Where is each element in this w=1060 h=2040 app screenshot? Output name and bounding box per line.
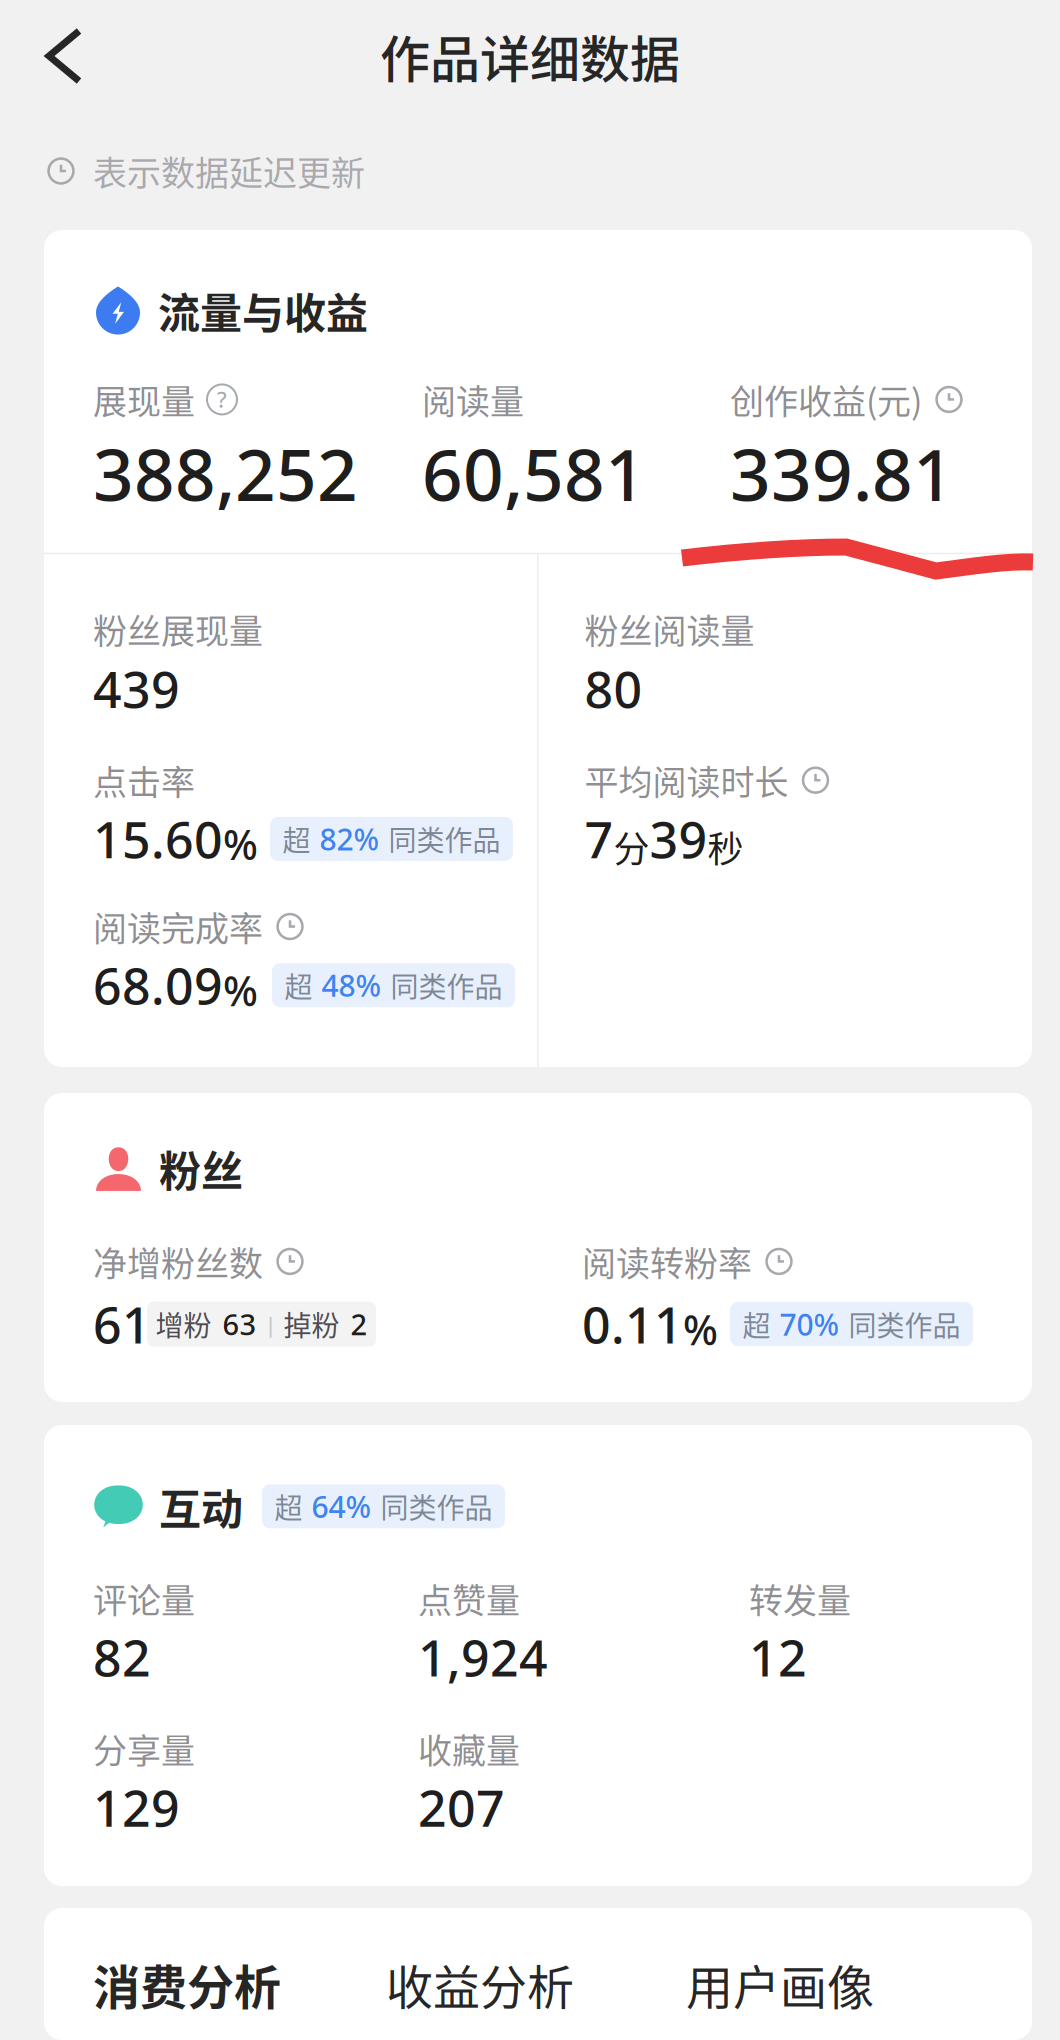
staticText: 粉丝: [159, 1138, 243, 1199]
button[interactable]: 消费分析: [77, 1926, 297, 2040]
staticText: 分: [613, 821, 649, 873]
staticText: 增粉: [155, 1304, 211, 1344]
staticText: 点击率: [93, 756, 195, 805]
staticText: 消费分析: [93, 1950, 281, 2018]
staticText: 129: [93, 1773, 180, 1841]
button[interactable]: 收益分析: [370, 1926, 590, 2040]
staticText: 82%: [319, 818, 379, 859]
staticText: 转发量: [749, 1574, 851, 1623]
staticText: 阅读完成率: [93, 902, 263, 951]
staticText: 流量与收益: [158, 280, 368, 341]
staticText: 82: [93, 1623, 151, 1691]
staticText: 掉粉: [283, 1304, 339, 1344]
staticText: 作品详细数据: [380, 20, 680, 92]
staticText: 7: [584, 805, 613, 873]
staticText: 1,924: [418, 1623, 548, 1691]
staticText: 70%: [779, 1304, 839, 1345]
staticText: 60,581: [422, 425, 646, 522]
staticText: %: [223, 962, 258, 1018]
staticText: 用户画像: [686, 1950, 874, 2018]
staticText: 同类作品: [380, 1486, 492, 1527]
staticText: 超: [284, 965, 312, 1005]
button[interactable]: 用户画像: [670, 1926, 890, 2040]
staticText: 15.60: [93, 805, 223, 873]
staticText: 分享量: [93, 1724, 195, 1773]
staticText: 粉丝展现量: [93, 604, 263, 653]
staticText: 439: [93, 654, 180, 723]
staticText: 超: [274, 1486, 302, 1527]
staticText: 39: [649, 805, 707, 873]
staticText: 同类作品: [388, 819, 500, 859]
staticText: 点赞量: [418, 1574, 520, 1623]
staticText: 388,252: [93, 425, 358, 522]
staticText: 61: [93, 1290, 151, 1358]
staticText: |: [264, 1309, 276, 1339]
staticText: ?: [217, 385, 227, 414]
staticText: 48%: [321, 965, 381, 1006]
staticText: 同类作品: [390, 965, 502, 1005]
staticText: 阅读转粉率: [582, 1237, 752, 1286]
staticText: 2: [350, 1304, 367, 1344]
staticText: 展现量: [93, 375, 195, 424]
staticText: 同类作品: [848, 1304, 960, 1344]
staticText: 互动: [159, 1476, 243, 1537]
staticText: 净增粉丝数: [93, 1237, 263, 1286]
staticText: 收藏量: [418, 1724, 520, 1773]
button[interactable]: Back: [0, 0, 108, 112]
staticText: %: [223, 816, 258, 872]
staticText: 秒: [707, 821, 743, 873]
staticText: 创作收益(元): [730, 375, 922, 424]
staticText: 粉丝阅读量: [584, 604, 754, 653]
staticText: 68.09: [93, 951, 223, 1019]
staticText: 64%: [311, 1486, 371, 1527]
staticText: 63: [222, 1304, 256, 1344]
staticText: %: [683, 1301, 718, 1357]
staticText: 平均阅读时长: [584, 756, 788, 805]
staticText: 阅读量: [422, 375, 524, 424]
staticText: 超: [742, 1304, 770, 1344]
staticText: 评论量: [93, 1574, 195, 1623]
staticText: 0.11: [582, 1290, 683, 1358]
staticText: 80: [584, 654, 642, 723]
staticText: 收益分析: [386, 1950, 574, 2018]
staticText: 207: [418, 1773, 505, 1841]
staticText: 超: [282, 819, 310, 859]
staticText: 339.81: [730, 425, 954, 522]
staticText: 表示数据延迟更新: [93, 146, 365, 196]
staticText: 12: [749, 1623, 807, 1691]
